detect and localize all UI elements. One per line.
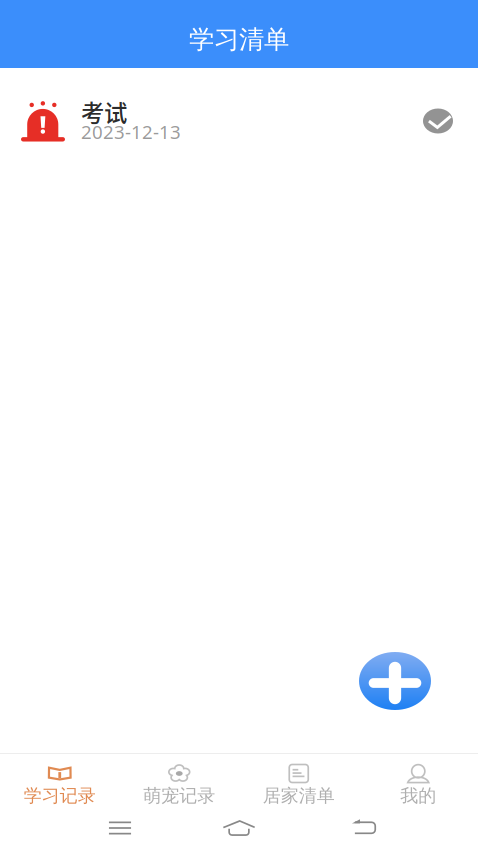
button[interactable]: 我的 <box>358 754 478 806</box>
button[interactable]: Back <box>330 806 398 850</box>
staticText: 学习清单 <box>189 24 289 55</box>
button[interactable]: Home <box>205 806 273 850</box>
staticText: 2023-12-13 <box>81 119 181 144</box>
staticText: 考试 <box>81 95 127 129</box>
staticText: 萌宠记录 <box>143 784 215 807</box>
staticText: 学习记录 <box>24 784 96 807</box>
button[interactable]: 考试 <box>0 68 478 174</box>
button[interactable]: Add <box>359 652 431 710</box>
button[interactable]: 学习记录 <box>0 754 119 806</box>
button[interactable]: 萌宠记录 <box>119 754 239 806</box>
button[interactable]: Recents <box>86 806 154 850</box>
button[interactable]: 居家清单 <box>239 754 358 806</box>
staticText: 我的 <box>400 784 436 807</box>
staticText: 居家清单 <box>263 784 335 807</box>
